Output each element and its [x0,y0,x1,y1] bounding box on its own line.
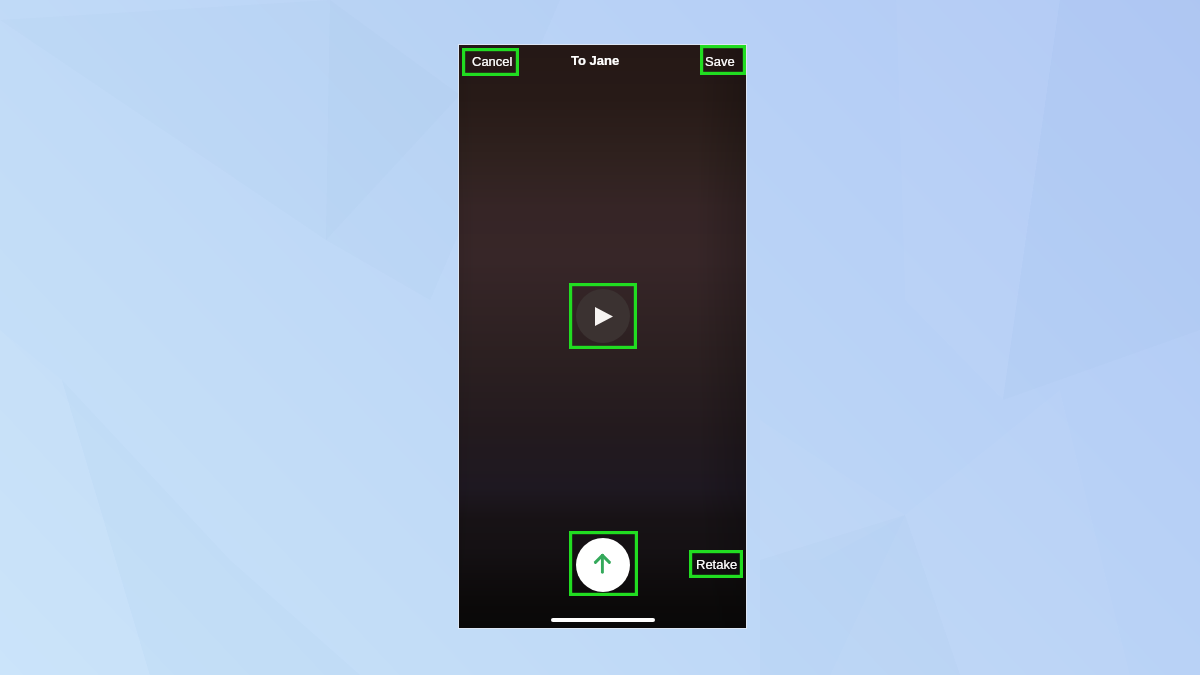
staticText: Save [705,54,735,69]
staticText: To Jane [571,53,620,68]
staticText: Retake [696,557,738,572]
staticText: Cancel [472,54,513,69]
button[interactable]: Play [576,289,630,343]
button[interactable]: Save [694,49,746,74]
button[interactable]: Retake [692,554,742,575]
button[interactable]: Send [576,538,630,592]
button[interactable]: Cancel [459,49,526,74]
